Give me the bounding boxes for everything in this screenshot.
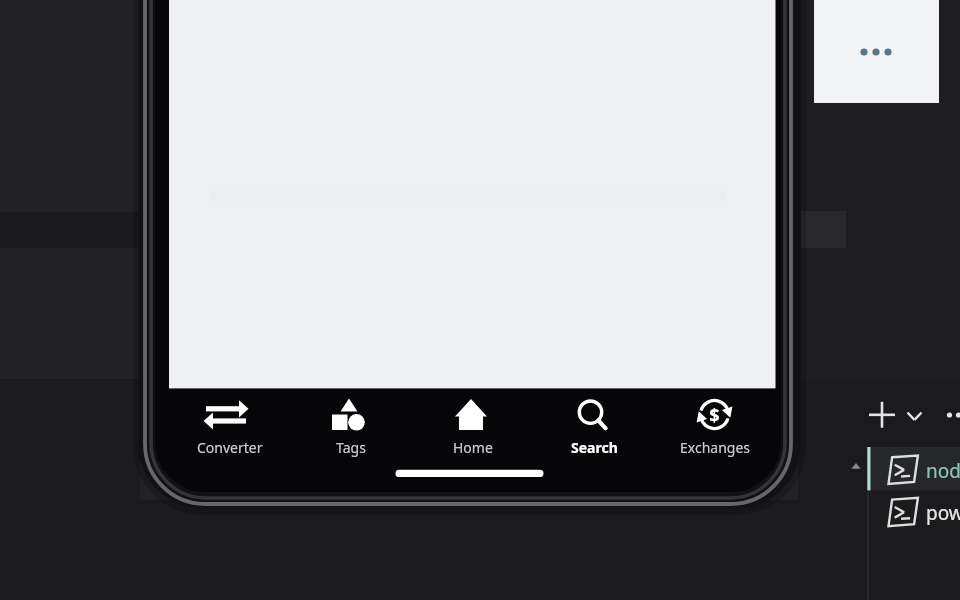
staticText: node — [926, 458, 960, 484]
button[interactable] — [940, 402, 960, 428]
staticText: Search — [571, 438, 618, 457]
staticText: Converter — [197, 438, 263, 457]
staticText: Home — [453, 438, 493, 457]
button[interactable]: Home — [416, 392, 530, 460]
staticText: powershell — [926, 500, 960, 526]
button[interactable]: Search — [537, 392, 651, 460]
staticText: Tags — [336, 438, 366, 457]
staticText: Exchanges — [680, 438, 750, 457]
staticText: $ — [701, 403, 728, 429]
button[interactable] — [902, 402, 928, 428]
button[interactable]: node — [870, 447, 960, 490]
button[interactable]: Tags — [294, 392, 408, 460]
button[interactable]: Exchanges — [658, 392, 772, 460]
button[interactable] — [848, 36, 902, 68]
button[interactable]: powershell — [870, 490, 960, 533]
button[interactable]: Converter — [173, 392, 287, 460]
button[interactable] — [866, 399, 898, 431]
